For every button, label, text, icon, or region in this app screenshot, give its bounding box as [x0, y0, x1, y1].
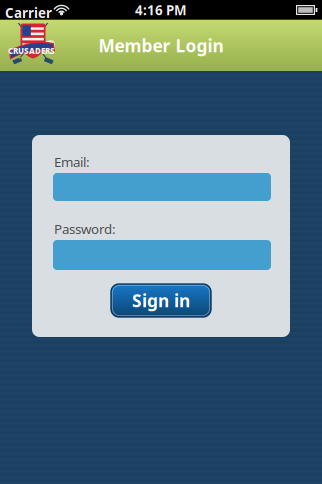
- button[interactable]: Password field: [53, 240, 271, 270]
- staticText: Carrier: [5, 4, 52, 22]
- staticText: Password:: [54, 220, 116, 238]
- staticText: 4:16 PM: [135, 1, 187, 19]
- button[interactable]: Crusaders: [0, 22, 61, 68]
- staticText: CRUSADERS: [8, 46, 55, 56]
- button[interactable]: Email field: [53, 173, 271, 201]
- button[interactable]: Sign in: [111, 284, 211, 317]
- staticText: Member Login: [98, 34, 223, 57]
- staticText: Email:: [54, 153, 90, 171]
- staticText: Sign in: [132, 289, 190, 312]
